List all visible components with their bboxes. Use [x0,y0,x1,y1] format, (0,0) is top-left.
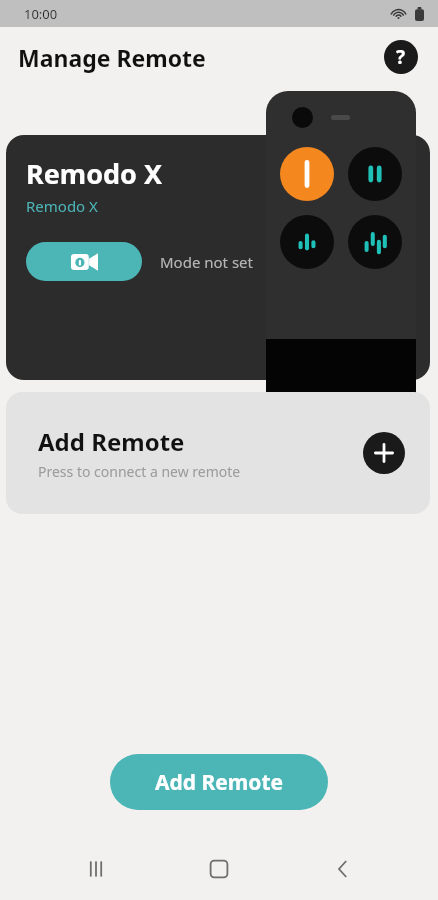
button[interactable]: Remote button [348,147,402,201]
staticText: ? [396,44,406,70]
button[interactable]: Add remote [363,432,405,474]
button[interactable]: Remote button [280,215,334,269]
button[interactable]: Add Remote [110,754,328,810]
button[interactable]: Help [384,40,418,74]
button[interactable]: Remote button [280,147,334,201]
staticText: Remodo X [26,155,163,192]
button[interactable]: Home [191,841,247,897]
staticText: Press to connect a new remote [38,462,241,481]
button[interactable]: Back [315,841,371,897]
button[interactable]: Remodo X [6,135,430,380]
button[interactable]: Add Remote [6,392,430,514]
staticText: Remodo X [26,196,98,216]
button[interactable]: Recent apps [68,841,124,897]
staticText: Add Remote [155,768,284,797]
staticText: Manage Remote [18,42,206,73]
staticText: Add Remote [38,425,185,458]
staticText: Mode not set [160,252,253,272]
staticText: 10:00 [24,5,58,23]
button[interactable]: Remote button [348,215,402,269]
button[interactable]: Video mode [26,242,142,281]
